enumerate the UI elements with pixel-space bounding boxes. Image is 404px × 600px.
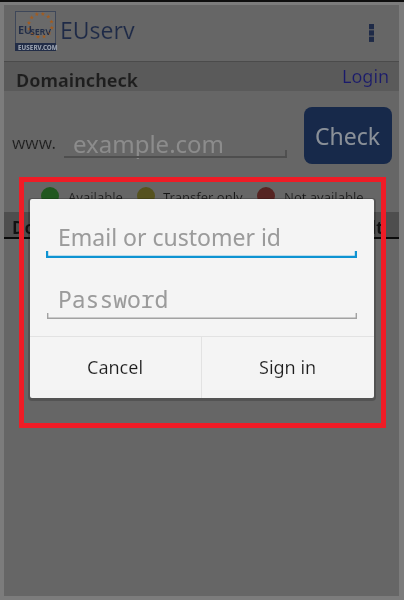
staticText: Login: [342, 64, 390, 89]
staticText: example.com: [73, 127, 225, 160]
button[interactable]: Login: [336, 62, 395, 91]
staticText: Domain: [12, 216, 78, 239]
button[interactable]: More options: [352, 10, 390, 57]
staticText: Password: [58, 283, 169, 314]
staticText: EUserv: [60, 14, 135, 45]
staticText: Transfer only: [163, 188, 243, 206]
staticText: Domaincheck: [16, 68, 139, 93]
button[interactable]: Check: [304, 107, 392, 164]
button[interactable]: Cancel: [30, 337, 201, 398]
staticText: EU: [18, 22, 32, 37]
staticText: Result: [330, 216, 384, 239]
staticText: SERV: [30, 25, 51, 37]
staticText: Email or customer id: [58, 221, 281, 252]
staticText: EUSERV.COM: [18, 43, 58, 51]
staticText: Not available: [284, 188, 364, 206]
staticText: Available: [68, 188, 123, 206]
staticText: Cancel: [87, 355, 144, 380]
staticText: Sign in: [259, 355, 317, 380]
staticText: www.: [12, 131, 56, 154]
button[interactable]: Sign in: [202, 337, 374, 398]
staticText: Check: [315, 120, 381, 151]
